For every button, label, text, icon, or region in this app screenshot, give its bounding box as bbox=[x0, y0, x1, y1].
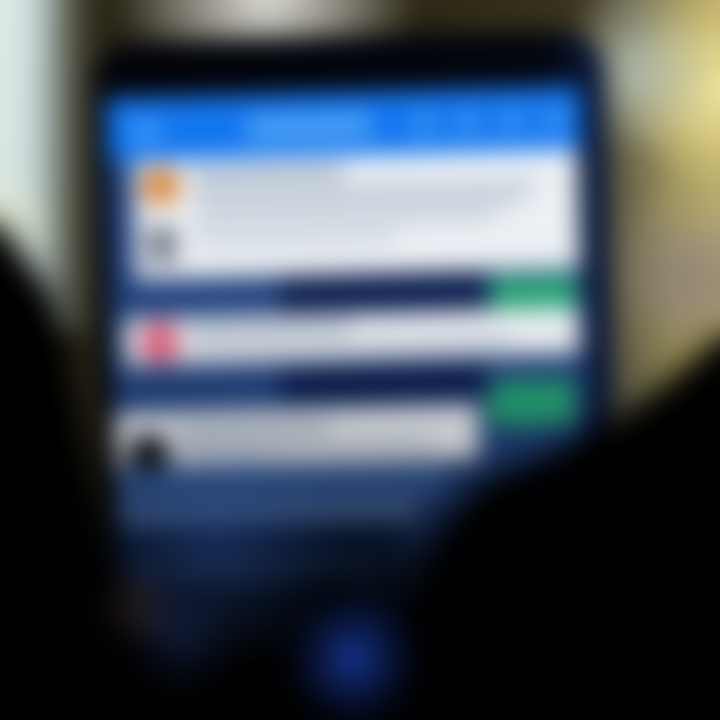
button[interactable] bbox=[114, 404, 480, 469]
button[interactable]: Action bbox=[412, 112, 435, 135]
button[interactable] bbox=[133, 149, 580, 280]
button[interactable] bbox=[124, 307, 580, 366]
button[interactable]: Compose bbox=[329, 609, 415, 677]
button[interactable]: Action bbox=[544, 108, 567, 131]
button[interactable]: Accept bbox=[491, 275, 578, 324]
button[interactable]: Accept bbox=[489, 379, 576, 427]
button[interactable]: Menu bbox=[106, 88, 582, 163]
button[interactable]: Menu bbox=[131, 119, 161, 142]
